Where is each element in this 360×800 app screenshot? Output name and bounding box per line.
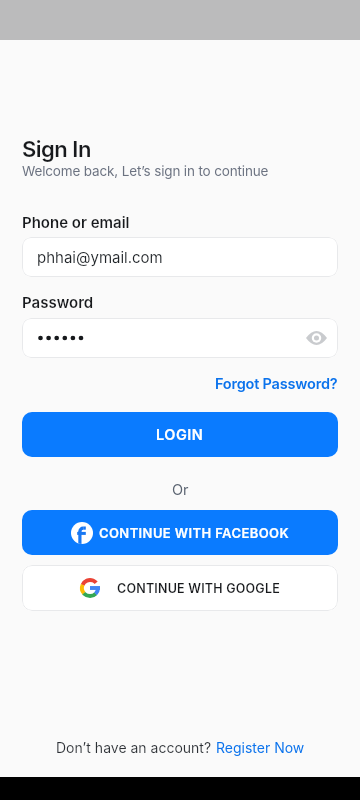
staticText: Phone or email [22,213,130,231]
staticText: Password [22,293,94,311]
button[interactable]: phhai@ymail.com [22,237,338,277]
button[interactable]: Don’t have an account? [56,739,305,756]
button[interactable]: LOGIN [22,412,338,457]
staticText: LOGIN [156,426,204,444]
staticText: phhai@ymail.com [37,248,163,266]
button[interactable]: Forgot Password? [215,375,338,393]
staticText: Or [172,481,189,499]
button[interactable] [22,318,338,358]
button[interactable]: CONTINUE WITH FACEBOOK [22,510,338,555]
staticText: Welcome back, Let’s sign in to continue [22,163,269,179]
staticText: Sign In [22,136,91,163]
staticText: CONTINUE WITH GOOGLE [117,581,280,596]
staticText: CONTINUE WITH FACEBOOK [99,525,289,541]
button[interactable]: CONTINUE WITH GOOGLE [22,565,338,611]
staticText: Don’t have an account? [56,739,216,756]
staticText: Register Now [216,739,305,756]
